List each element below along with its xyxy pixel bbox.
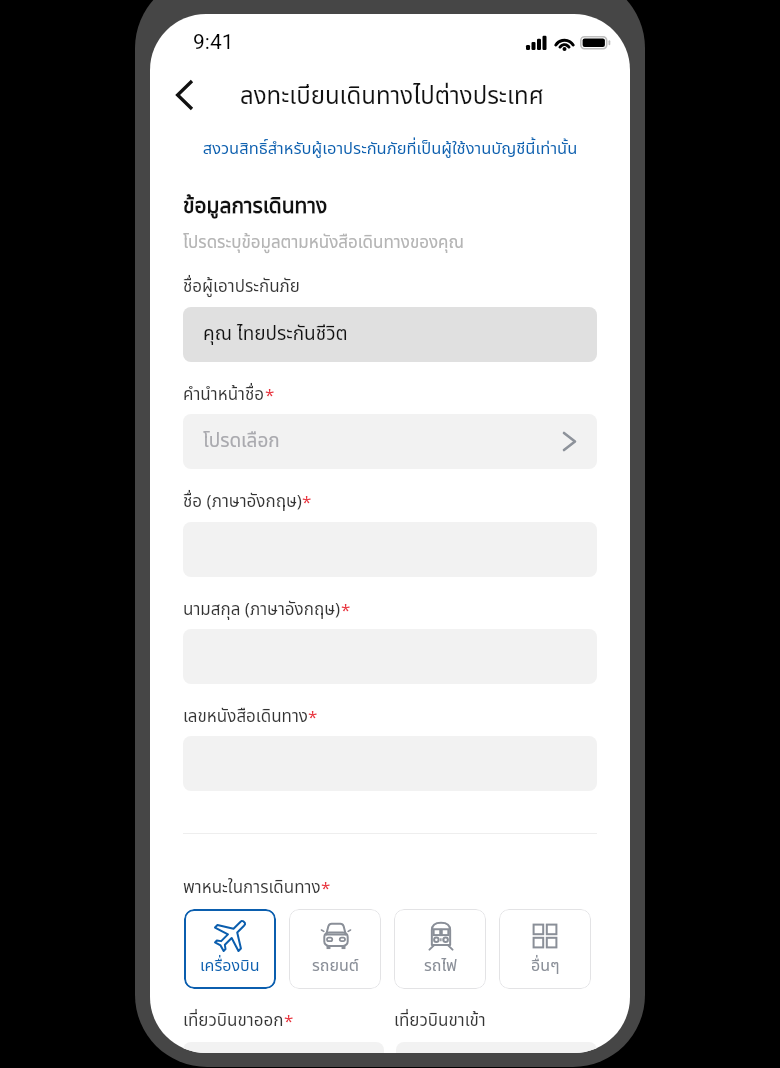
staticText: คำนำหน้าชื่อ (183, 382, 265, 408)
button[interactable]: รถยนต์ (289, 909, 381, 989)
button[interactable] (183, 1042, 384, 1053)
staticText: * (321, 876, 331, 902)
staticText: * (341, 598, 351, 624)
staticText: นามสกุล (ภาษาอังกฤษ) (183, 597, 341, 623)
button[interactable]: เครื่องบิน (184, 909, 276, 989)
staticText: โปรดระบุข้อมูลตามหนังสือเดินทางของคุณ (183, 230, 464, 256)
staticText: * (284, 1009, 294, 1035)
staticText: เครื่องบิน (200, 954, 260, 978)
staticText: เที่ยวบินขาเข้า (394, 1008, 486, 1034)
staticText: เที่ยวบินขาออก (183, 1008, 284, 1034)
staticText: * (308, 705, 318, 731)
staticText: ชื่อผู้เอาประกันภัย (183, 274, 300, 300)
button[interactable]: โปรดเลือก (183, 414, 597, 469)
button[interactable]: Back (155, 68, 213, 122)
button[interactable]: สงวนสิทธิ์สำหรับผู้เอาประกันภัยที่เป็นผู… (150, 136, 630, 161)
button[interactable] (396, 1042, 597, 1053)
staticText: ชื่อ (ภาษาอังกฤษ) (183, 489, 302, 515)
staticText: สงวนสิทธิ์สำหรับผู้เอาประกันภัยที่เป็นผู… (150, 136, 630, 161)
staticText: ข้อมูลการเดินทาง (183, 191, 328, 223)
staticText: คุณ ไทยประกันชีวิต (203, 320, 348, 349)
staticText: ลงทะเบียนเดินทางไปต่างประเทศ (240, 79, 544, 115)
staticText: รถไฟ (424, 954, 457, 978)
staticText: * (265, 383, 275, 409)
staticText: เลขหนังสือเดินทาง (183, 704, 308, 730)
staticText: อื่นๆ (531, 954, 560, 978)
staticText: * (302, 490, 312, 516)
staticText: 9:41 (193, 30, 234, 55)
staticText: โปรดเลือก (203, 427, 280, 456)
button[interactable]: คุณ ไทยประกันชีวิต (183, 307, 597, 362)
button[interactable]: อื่นๆ (499, 909, 591, 989)
staticText: พาหนะในการเดินทาง (183, 875, 321, 901)
staticText: รถยนต์ (312, 954, 359, 978)
button[interactable]: รถไฟ (394, 909, 486, 989)
